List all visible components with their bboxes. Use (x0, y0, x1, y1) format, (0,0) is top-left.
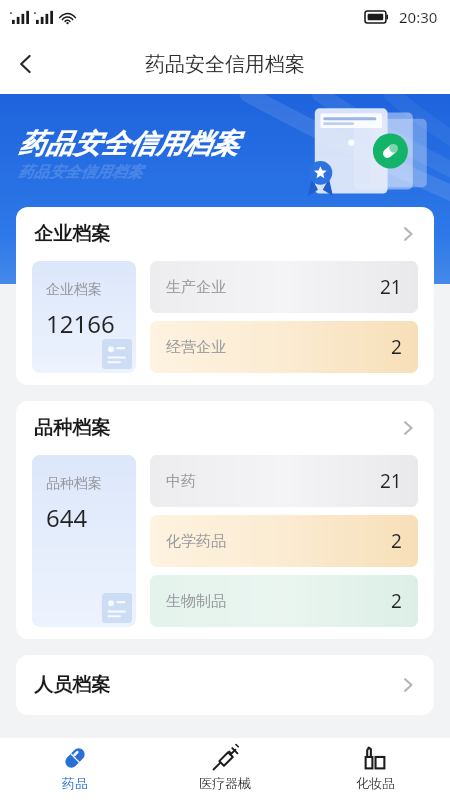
button[interactable]: 化妆品 (300, 738, 450, 800)
button[interactable]: 企业档案 (16, 207, 434, 385)
staticText: 企业档案 (34, 222, 110, 246)
staticText: 品种档案 (34, 416, 110, 440)
button[interactable]: Back (0, 38, 52, 90)
staticText: 生产企业 (166, 278, 226, 297)
button[interactable]: 人员档案 (16, 655, 434, 715)
staticText: 品种档案 (46, 475, 102, 493)
staticText: 化妆品 (356, 775, 395, 791)
staticText: 经营企业 (166, 338, 226, 357)
button[interactable]: 化学药品 (150, 515, 418, 567)
staticText: 21 (380, 468, 402, 494)
button[interactable]: 药品 (0, 738, 150, 800)
staticText: 人员档案 (34, 673, 110, 697)
staticText: 化学药品 (166, 532, 226, 551)
staticText: 2 (391, 334, 402, 360)
staticText: 20:30 (399, 7, 438, 27)
button[interactable]: 企业档案 (32, 261, 136, 373)
staticText: 12166 (46, 307, 115, 340)
button[interactable]: 品种档案 (32, 455, 136, 627)
staticText: 医疗器械 (199, 775, 251, 791)
staticText: 药品 (62, 775, 88, 791)
button[interactable]: 经营企业 (150, 321, 418, 373)
staticText: 企业档案 (46, 281, 102, 299)
staticText: 21 (380, 274, 402, 300)
staticText: 2 (391, 588, 402, 614)
staticText: 644 (46, 501, 88, 534)
staticText: 生物制品 (166, 592, 226, 611)
button[interactable]: 品种档案 (16, 401, 434, 639)
staticText: 2 (391, 528, 402, 554)
button[interactable]: 生产企业 (150, 261, 418, 313)
staticText: 药品安全信用档案 (18, 127, 239, 161)
button[interactable]: 生物制品 (150, 575, 418, 627)
button[interactable]: 医疗器械 (150, 738, 300, 800)
staticText: 药品安全信用档案 (145, 52, 305, 77)
staticText: 药品安全信用档案 (18, 163, 143, 182)
button[interactable]: 中药 (150, 455, 418, 507)
staticText: 中药 (166, 472, 196, 491)
